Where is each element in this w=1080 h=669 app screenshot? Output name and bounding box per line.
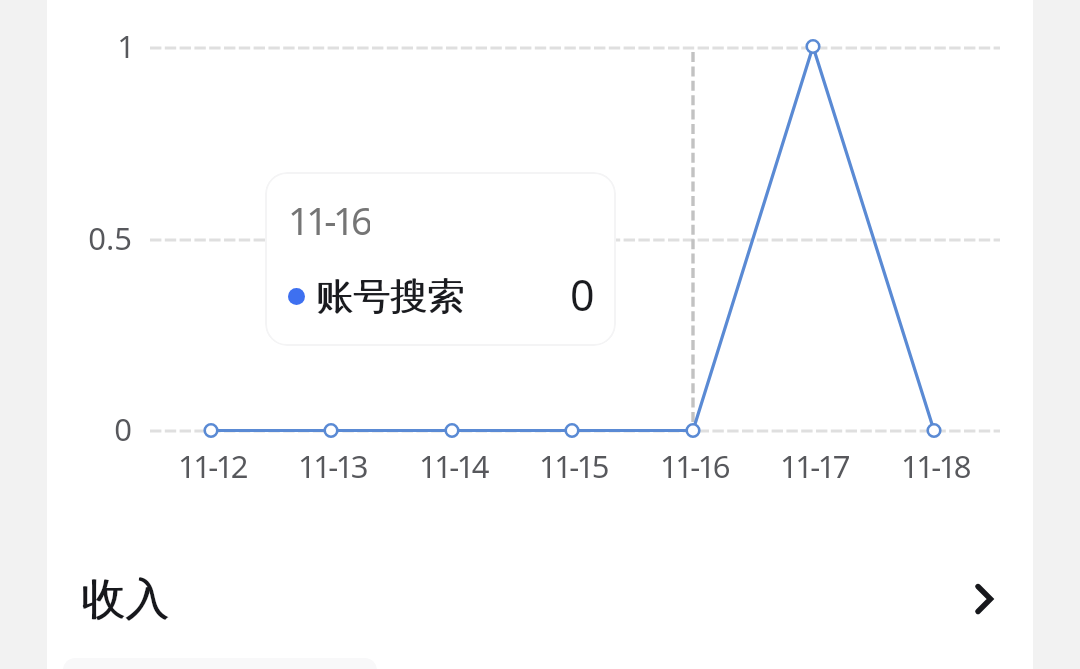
staticText: 账号搜索 — [316, 273, 464, 320]
staticText: 11-15 — [539, 445, 607, 487]
button[interactable]: 收入 — [47, 538, 1033, 660]
button[interactable]: 11-16 — [265, 172, 616, 346]
other: Open income details — [959, 582, 993, 616]
staticText: 1 — [117, 25, 135, 67]
staticText: 11-12 — [178, 445, 246, 487]
staticText: 11-17 — [780, 445, 848, 487]
staticText: 11-14 — [419, 445, 487, 487]
staticText: 11-16 — [660, 445, 728, 487]
staticText: 11-16 — [288, 194, 370, 238]
staticText: 账号搜索 — [317, 273, 465, 320]
staticText: 11-13 — [298, 445, 366, 487]
staticText: 收入 — [81, 572, 169, 627]
staticText: 0.5 — [88, 217, 132, 259]
staticText: 0 — [114, 408, 132, 450]
staticText: 收入 — [82, 572, 170, 627]
staticText: 11-18 — [901, 445, 969, 487]
staticText: 0 — [570, 265, 595, 315]
